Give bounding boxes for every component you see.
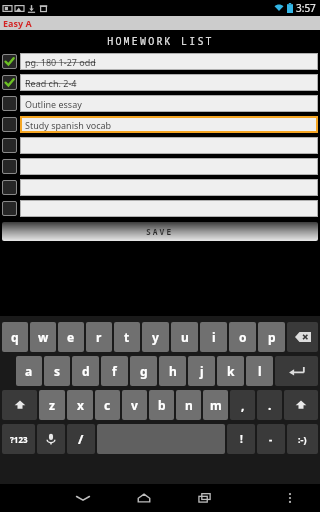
staticText: e bbox=[67, 329, 75, 345]
button[interactable]: g bbox=[130, 356, 157, 386]
staticText: c bbox=[104, 397, 111, 413]
staticText: v bbox=[131, 397, 138, 413]
staticText: f bbox=[112, 363, 117, 379]
staticText: ! bbox=[240, 432, 243, 446]
staticText: g bbox=[140, 363, 148, 379]
button[interactable]: s bbox=[44, 356, 70, 386]
button[interactable]: Shift bbox=[284, 390, 318, 420]
button[interactable]: Hide keyboard bbox=[62, 484, 103, 512]
staticText: , bbox=[241, 397, 245, 413]
button[interactable] bbox=[20, 137, 318, 154]
button[interactable]: Study spanish vocab bbox=[20, 116, 318, 133]
button[interactable]: u bbox=[171, 322, 198, 352]
staticText: k bbox=[227, 363, 235, 379]
button[interactable]: z bbox=[39, 390, 65, 420]
button[interactable]: Toggle done bbox=[2, 96, 17, 111]
button[interactable]: Toggle done bbox=[2, 159, 17, 174]
button[interactable]: t bbox=[114, 322, 140, 352]
button[interactable] bbox=[20, 200, 318, 217]
button[interactable]: ?123 bbox=[2, 424, 35, 454]
button[interactable]: r bbox=[86, 322, 112, 352]
button[interactable]: j bbox=[188, 356, 215, 386]
button[interactable]: Voice input bbox=[37, 424, 65, 454]
button[interactable]: q bbox=[2, 322, 28, 352]
button[interactable]: More options bbox=[274, 484, 306, 512]
button[interactable]: i bbox=[200, 322, 227, 352]
staticText: u bbox=[181, 329, 189, 345]
button[interactable]: l bbox=[246, 356, 273, 386]
button[interactable]: Read ch. 2-4 bbox=[20, 74, 318, 91]
button[interactable]: f bbox=[101, 356, 128, 386]
staticText: r bbox=[96, 329, 102, 345]
staticText: :-) bbox=[298, 433, 307, 445]
staticText: h bbox=[169, 363, 177, 379]
button[interactable]: SAVE bbox=[2, 222, 318, 241]
staticText: HOMEWORK LIST bbox=[107, 34, 214, 48]
button[interactable]: Toggle done bbox=[2, 54, 17, 69]
button[interactable]: k bbox=[217, 356, 244, 386]
staticText: i bbox=[212, 329, 216, 345]
staticText: y bbox=[152, 329, 159, 345]
staticText: z bbox=[49, 397, 55, 413]
button[interactable]: Toggle done bbox=[2, 138, 17, 153]
staticText: p bbox=[268, 329, 276, 345]
button[interactable]: ! bbox=[227, 424, 255, 454]
button[interactable]: Toggle done bbox=[2, 75, 17, 90]
staticText: . bbox=[268, 397, 272, 413]
staticText: b bbox=[158, 397, 166, 413]
button[interactable]: h bbox=[159, 356, 186, 386]
staticText: / bbox=[78, 430, 84, 448]
button[interactable]: d bbox=[72, 356, 99, 386]
staticText: ?123 bbox=[10, 434, 28, 445]
button[interactable]: Toggle done bbox=[2, 201, 17, 216]
button[interactable]: y bbox=[142, 322, 169, 352]
button[interactable]: v bbox=[122, 390, 147, 420]
staticText: m bbox=[210, 397, 222, 413]
button[interactable]: Home bbox=[123, 484, 164, 512]
staticText: d bbox=[82, 363, 90, 379]
button[interactable]: Shift bbox=[2, 390, 37, 420]
staticText: l bbox=[258, 363, 262, 379]
button[interactable] bbox=[20, 179, 318, 196]
staticText: Read ch. 2-4 bbox=[25, 77, 77, 89]
button[interactable]: b bbox=[149, 390, 174, 420]
staticText: 3:57 bbox=[296, 1, 316, 15]
staticText: j bbox=[200, 363, 204, 379]
button[interactable]: Toggle done bbox=[2, 180, 17, 195]
button[interactable]: x bbox=[67, 390, 93, 420]
button[interactable]: . bbox=[257, 390, 282, 420]
button[interactable]: Easy A bbox=[0, 16, 320, 30]
staticText: a bbox=[25, 363, 33, 379]
button[interactable]: c bbox=[95, 390, 120, 420]
button[interactable]: Backspace bbox=[287, 322, 318, 352]
staticText: Outline essay bbox=[25, 98, 82, 110]
button[interactable]: Outline essay bbox=[20, 95, 318, 112]
staticText: x bbox=[77, 397, 84, 413]
button[interactable]: , bbox=[230, 390, 255, 420]
button[interactable]: o bbox=[229, 322, 256, 352]
staticText: pg. 180 1-27 odd bbox=[25, 56, 96, 68]
button[interactable]: a bbox=[16, 356, 42, 386]
button[interactable]: :-) bbox=[287, 424, 318, 454]
staticText: - bbox=[269, 432, 273, 446]
button[interactable]: p bbox=[258, 322, 285, 352]
staticText: o bbox=[239, 329, 247, 345]
staticText: Study spanish vocab bbox=[25, 119, 112, 131]
staticText: w bbox=[38, 329, 49, 345]
button[interactable]: w bbox=[30, 322, 56, 352]
button[interactable]: m bbox=[203, 390, 228, 420]
button[interactable]: n bbox=[176, 390, 201, 420]
staticText: t bbox=[124, 329, 130, 345]
staticText: n bbox=[185, 397, 193, 413]
button[interactable]: Toggle done bbox=[2, 117, 17, 132]
button[interactable]: / bbox=[67, 424, 95, 454]
button[interactable]: Recent apps bbox=[184, 484, 225, 512]
staticText: s bbox=[54, 363, 61, 379]
button[interactable]: Enter bbox=[275, 356, 318, 386]
button[interactable] bbox=[20, 158, 318, 175]
button[interactable]: pg. 180 1-27 odd bbox=[20, 53, 318, 70]
button[interactable]: - bbox=[257, 424, 285, 454]
button[interactable]: e bbox=[58, 322, 84, 352]
staticText: Easy A bbox=[3, 17, 32, 29]
